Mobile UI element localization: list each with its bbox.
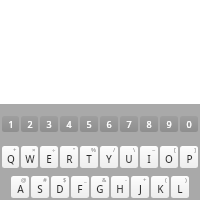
- staticText: #: [43, 176, 47, 184]
- button[interactable]: ÷: [40, 146, 58, 168]
- staticText: 1: [8, 118, 14, 130]
- staticText: ×: [32, 146, 36, 154]
- button[interactable]: #: [31, 176, 49, 198]
- button[interactable]: $: [51, 176, 69, 198]
- staticText: A: [17, 182, 24, 196]
- staticText: +: [143, 176, 147, 184]
- staticText: 9: [166, 118, 172, 130]
- staticText: Y: [106, 152, 112, 166]
- staticText: F: [77, 182, 83, 196]
- staticText: J: [139, 182, 142, 196]
- staticText: $: [63, 176, 67, 184]
- staticText: ~: [152, 146, 156, 154]
- staticText: R: [66, 152, 73, 166]
- staticText: 4: [66, 118, 72, 130]
- staticText: D: [56, 182, 64, 196]
- staticText: &: [102, 176, 107, 184]
- button[interactable]: /: [100, 146, 118, 168]
- button[interactable]: [: [160, 146, 178, 168]
- button[interactable]: \: [120, 146, 138, 168]
- staticText: I: [147, 152, 151, 166]
- staticText: @: [21, 176, 27, 184]
- button[interactable]: (: [151, 176, 169, 198]
- staticText: 5: [86, 118, 92, 130]
- button[interactable]: 7: [120, 116, 138, 132]
- staticText: E: [46, 152, 52, 166]
- button[interactable]: 3: [40, 116, 58, 132]
- staticText: ": [73, 146, 76, 154]
- staticText: %: [91, 146, 96, 154]
- button[interactable]: 9: [160, 116, 178, 132]
- button[interactable]: 8: [140, 116, 158, 132]
- button[interactable]: _: [71, 176, 89, 198]
- staticText: _: [84, 176, 87, 184]
- staticText: Q: [7, 152, 15, 166]
- staticText: /: [113, 146, 116, 154]
- staticText: G: [96, 182, 104, 196]
- staticText: 3: [46, 118, 52, 130]
- staticText: (: [165, 176, 167, 184]
- button[interactable]: 5: [80, 116, 98, 132]
- button[interactable]: 1: [2, 116, 19, 132]
- staticText: [: [174, 146, 176, 154]
- button[interactable]: ~: [140, 146, 158, 168]
- staticText: +: [13, 146, 17, 154]
- staticText: 6: [106, 118, 112, 130]
- button[interactable]: @: [11, 176, 29, 198]
- button[interactable]: +: [131, 176, 149, 198]
- button[interactable]: ]: [180, 146, 198, 168]
- staticText: ]: [194, 146, 196, 154]
- staticText: 0: [186, 118, 192, 130]
- staticText: K: [157, 182, 164, 196]
- button[interactable]: %: [80, 146, 98, 168]
- staticText: 7: [126, 118, 132, 130]
- staticText: -: [125, 176, 127, 184]
- button[interactable]: -: [111, 176, 129, 198]
- button[interactable]: 6: [100, 116, 118, 132]
- staticText: H: [116, 182, 124, 196]
- staticText: T: [86, 152, 92, 166]
- button[interactable]: 4: [60, 116, 78, 132]
- button[interactable]: +: [2, 146, 19, 168]
- staticText: P: [186, 152, 193, 166]
- button[interactable]: 2: [21, 116, 38, 132]
- staticText: 2: [27, 118, 33, 130]
- button[interactable]: 0: [180, 116, 198, 132]
- staticText: S: [37, 182, 43, 196]
- staticText: 8: [146, 118, 152, 130]
- staticText: O: [165, 152, 173, 166]
- staticText: U: [125, 152, 133, 166]
- staticText: W: [25, 152, 35, 166]
- button[interactable]: ): [171, 176, 189, 198]
- button[interactable]: ": [60, 146, 78, 168]
- staticText: ÷: [52, 146, 56, 154]
- button[interactable]: &: [91, 176, 109, 198]
- staticText: \: [133, 146, 136, 154]
- button[interactable]: ×: [21, 146, 38, 168]
- staticText: ): [185, 176, 187, 184]
- staticText: L: [177, 182, 183, 196]
